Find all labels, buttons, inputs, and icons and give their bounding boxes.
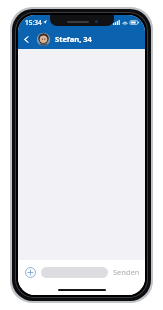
button[interactable]: Add attachment (23, 265, 37, 279)
staticText: 15:34 (25, 18, 42, 27)
button[interactable]: Senden (113, 267, 140, 277)
button[interactable]: Stefan, 34 (37, 29, 145, 49)
staticText: Stefan, 34 (55, 34, 92, 44)
staticText: Senden (113, 267, 140, 277)
button[interactable] (41, 267, 108, 278)
button[interactable]: Back (18, 31, 34, 47)
